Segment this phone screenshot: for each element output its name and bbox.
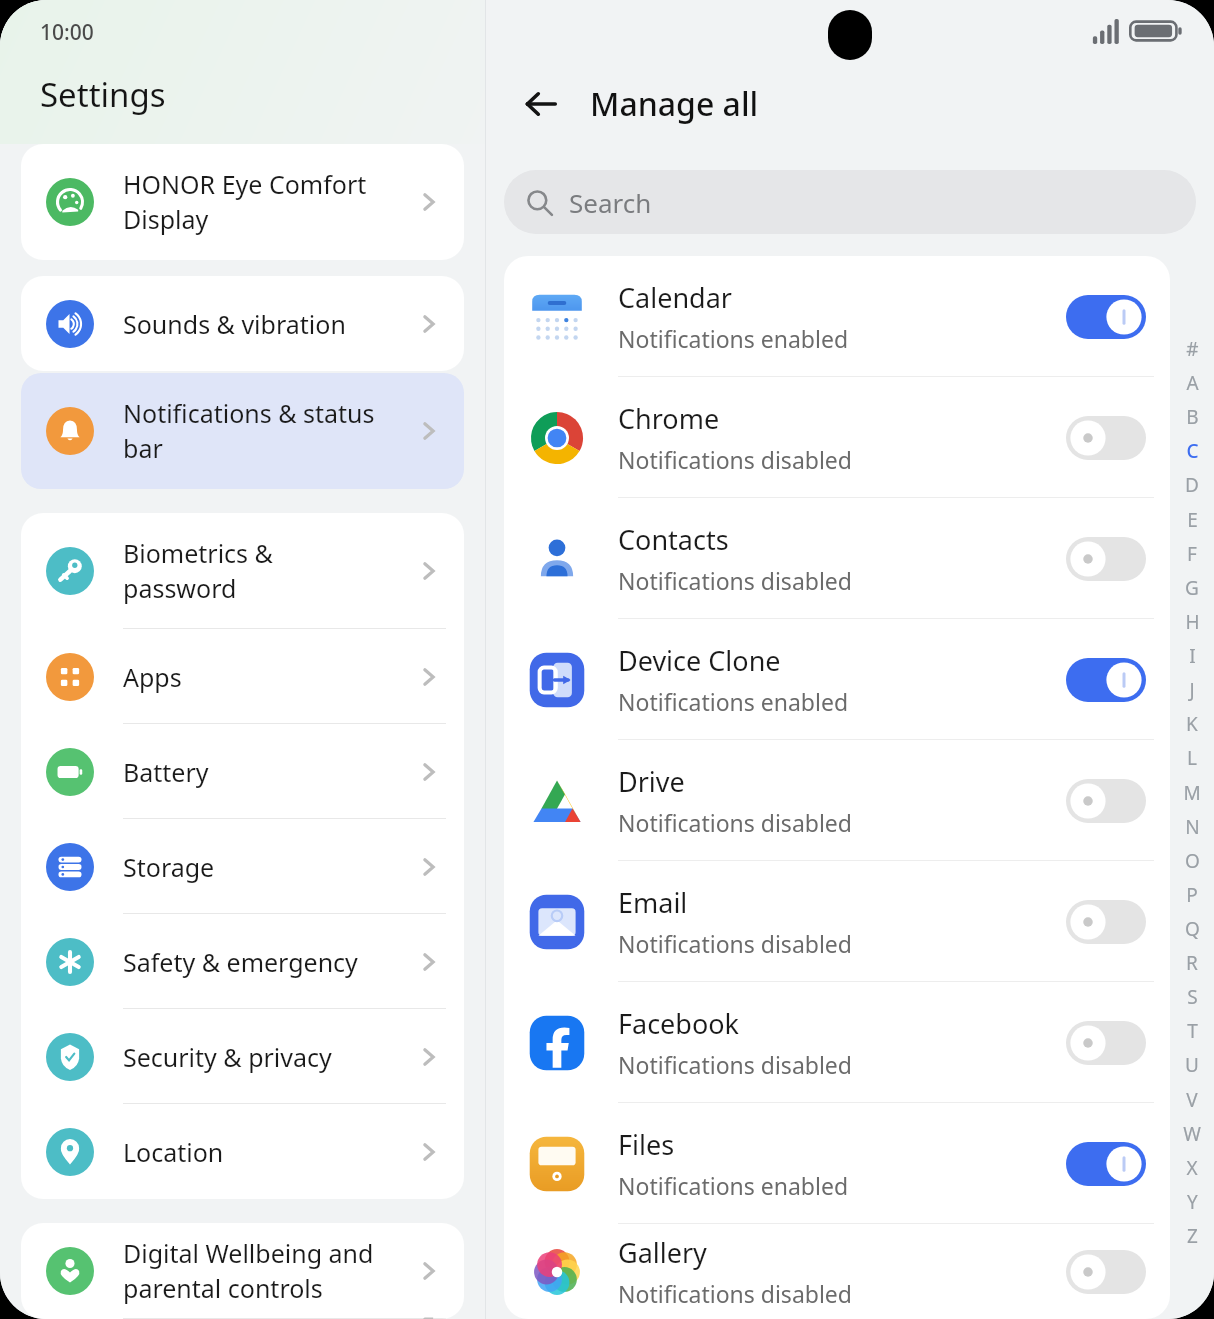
button[interactable]: Email notifications toggle bbox=[1066, 900, 1146, 944]
button[interactable]: Y bbox=[1187, 1189, 1198, 1215]
button[interactable]: Storage bbox=[21, 819, 464, 914]
button[interactable]: H bbox=[1185, 609, 1200, 635]
button[interactable]: J bbox=[1189, 677, 1195, 703]
button[interactable]: D bbox=[1185, 472, 1199, 498]
staticText: Gallery bbox=[618, 1234, 707, 1271]
button[interactable]: Device Clone notifications toggle bbox=[1066, 658, 1146, 702]
button[interactable]: Device Clone bbox=[504, 619, 1170, 740]
staticText: 10:00 bbox=[40, 18, 94, 47]
staticText: Notifications enabled bbox=[618, 686, 849, 717]
button[interactable]: V bbox=[1186, 1087, 1198, 1113]
staticText: Notifications enabled bbox=[618, 323, 849, 354]
button[interactable]: K bbox=[1186, 711, 1198, 737]
button[interactable]: P bbox=[1186, 882, 1198, 908]
staticText: Location bbox=[123, 1135, 416, 1169]
button[interactable]: Notifications & status bar bbox=[21, 373, 464, 489]
staticText: Digital Wellbeing and parental controls bbox=[123, 1236, 416, 1306]
button[interactable]: Files bbox=[504, 1103, 1170, 1224]
button[interactable]: Gallery bbox=[504, 1224, 1170, 1319]
button[interactable]: U bbox=[1185, 1052, 1199, 1078]
button[interactable]: Back bbox=[514, 77, 568, 131]
button[interactable]: Email bbox=[504, 861, 1170, 982]
staticText: Settings bbox=[40, 72, 166, 117]
button[interactable]: N bbox=[1185, 814, 1200, 840]
staticText: HONOR Eye Comfort Display bbox=[123, 167, 416, 237]
button[interactable]: Location bbox=[21, 1104, 464, 1199]
staticText: Files bbox=[618, 1126, 675, 1163]
button[interactable]: Sounds & vibration bbox=[21, 276, 464, 371]
button[interactable]: A bbox=[1186, 370, 1199, 396]
button[interactable]: E bbox=[1187, 507, 1198, 533]
button[interactable]: Drive notifications toggle bbox=[1066, 779, 1146, 823]
button[interactable]: Gallery notifications toggle bbox=[1066, 1250, 1146, 1294]
button[interactable]: L bbox=[1187, 745, 1197, 771]
button[interactable]: I bbox=[1189, 643, 1196, 669]
button[interactable]: Search bbox=[504, 170, 1196, 234]
button[interactable]: O bbox=[1185, 848, 1200, 874]
button[interactable]: Calendar notifications toggle bbox=[1066, 295, 1146, 339]
staticText: Manage all bbox=[590, 82, 759, 126]
button[interactable]: Contacts notifications toggle bbox=[1066, 537, 1146, 581]
button[interactable]: F bbox=[1187, 541, 1197, 567]
staticText: Security & privacy bbox=[123, 1040, 416, 1074]
staticText: Device Clone bbox=[618, 642, 781, 679]
button[interactable]: Contacts bbox=[504, 498, 1170, 619]
staticText: Facebook bbox=[618, 1005, 740, 1042]
button[interactable]: Battery bbox=[21, 724, 464, 819]
staticText: Biometrics & password bbox=[123, 536, 416, 606]
button[interactable]: # bbox=[1186, 336, 1199, 362]
staticText: Drive bbox=[618, 763, 685, 800]
staticText: Calendar bbox=[618, 279, 732, 316]
button[interactable]: Biometrics & password bbox=[21, 513, 464, 629]
button[interactable]: C bbox=[1186, 438, 1199, 464]
staticText: Notifications enabled bbox=[618, 1170, 849, 1201]
staticText: Apps bbox=[123, 660, 416, 694]
staticText: Notifications disabled bbox=[618, 565, 852, 596]
staticText: Notifications disabled bbox=[618, 444, 852, 475]
staticText: Sounds & vibration bbox=[123, 307, 416, 341]
button[interactable]: R bbox=[1186, 950, 1198, 976]
button[interactable]: Digital Wellbeing and parental controls bbox=[21, 1223, 464, 1319]
button[interactable]: Drive bbox=[504, 740, 1170, 861]
button[interactable]: Q bbox=[1185, 916, 1200, 942]
button[interactable]: B bbox=[1186, 404, 1199, 430]
staticText: Battery bbox=[123, 755, 416, 789]
button[interactable]: Files notifications toggle bbox=[1066, 1142, 1146, 1186]
staticText: Notifications disabled bbox=[618, 1278, 852, 1309]
button[interactable]: T bbox=[1187, 1018, 1198, 1044]
staticText: Notifications disabled bbox=[618, 1049, 852, 1080]
staticText: Chrome bbox=[618, 400, 720, 437]
button[interactable]: Facebook bbox=[504, 982, 1170, 1103]
staticText: Contacts bbox=[618, 521, 729, 558]
button[interactable]: Safety & emergency bbox=[21, 914, 464, 1009]
button[interactable]: X bbox=[1186, 1155, 1198, 1181]
staticText: Notifications disabled bbox=[618, 928, 852, 959]
staticText: Email bbox=[618, 884, 688, 921]
staticText: Search bbox=[569, 185, 652, 220]
staticText: Notifications & status bar bbox=[123, 396, 416, 466]
button[interactable]: Chrome notifications toggle bbox=[1066, 416, 1146, 460]
staticText: Storage bbox=[123, 850, 416, 884]
staticText: Notifications disabled bbox=[618, 807, 852, 838]
button[interactable]: Apps bbox=[21, 629, 464, 724]
button[interactable]: G bbox=[1185, 575, 1199, 601]
button[interactable]: S bbox=[1187, 984, 1198, 1010]
button[interactable]: Calendar bbox=[504, 256, 1170, 377]
button[interactable]: Facebook notifications toggle bbox=[1066, 1021, 1146, 1065]
button[interactable]: W bbox=[1183, 1121, 1201, 1147]
button[interactable]: Chrome bbox=[504, 377, 1170, 498]
button[interactable]: HONOR Eye Comfort Display bbox=[21, 144, 464, 260]
button[interactable]: M bbox=[1183, 780, 1201, 806]
button[interactable]: Security & privacy bbox=[21, 1009, 464, 1104]
button[interactable]: Z bbox=[1187, 1223, 1198, 1249]
staticText: Safety & emergency bbox=[123, 945, 416, 979]
